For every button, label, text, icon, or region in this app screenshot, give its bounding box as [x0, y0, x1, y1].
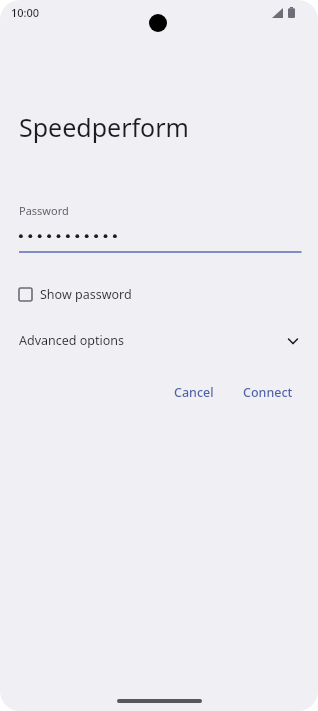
- staticText: Connect: [243, 384, 293, 401]
- staticText: Cancel: [174, 384, 214, 401]
- button[interactable]: Show password: [19, 282, 132, 307]
- other: Expand advanced options: [286, 333, 300, 349]
- button[interactable]: [19, 225, 302, 253]
- button[interactable]: Cancel: [165, 378, 223, 407]
- button[interactable]: Advanced options: [19, 328, 302, 353]
- staticText: 10:00: [11, 5, 40, 20]
- staticText: Speedperform: [19, 110, 189, 144]
- staticText: Show password: [40, 286, 132, 303]
- staticText: Advanced options: [19, 332, 286, 349]
- button[interactable]: Connect: [234, 378, 302, 407]
- staticText: Password: [19, 203, 69, 218]
